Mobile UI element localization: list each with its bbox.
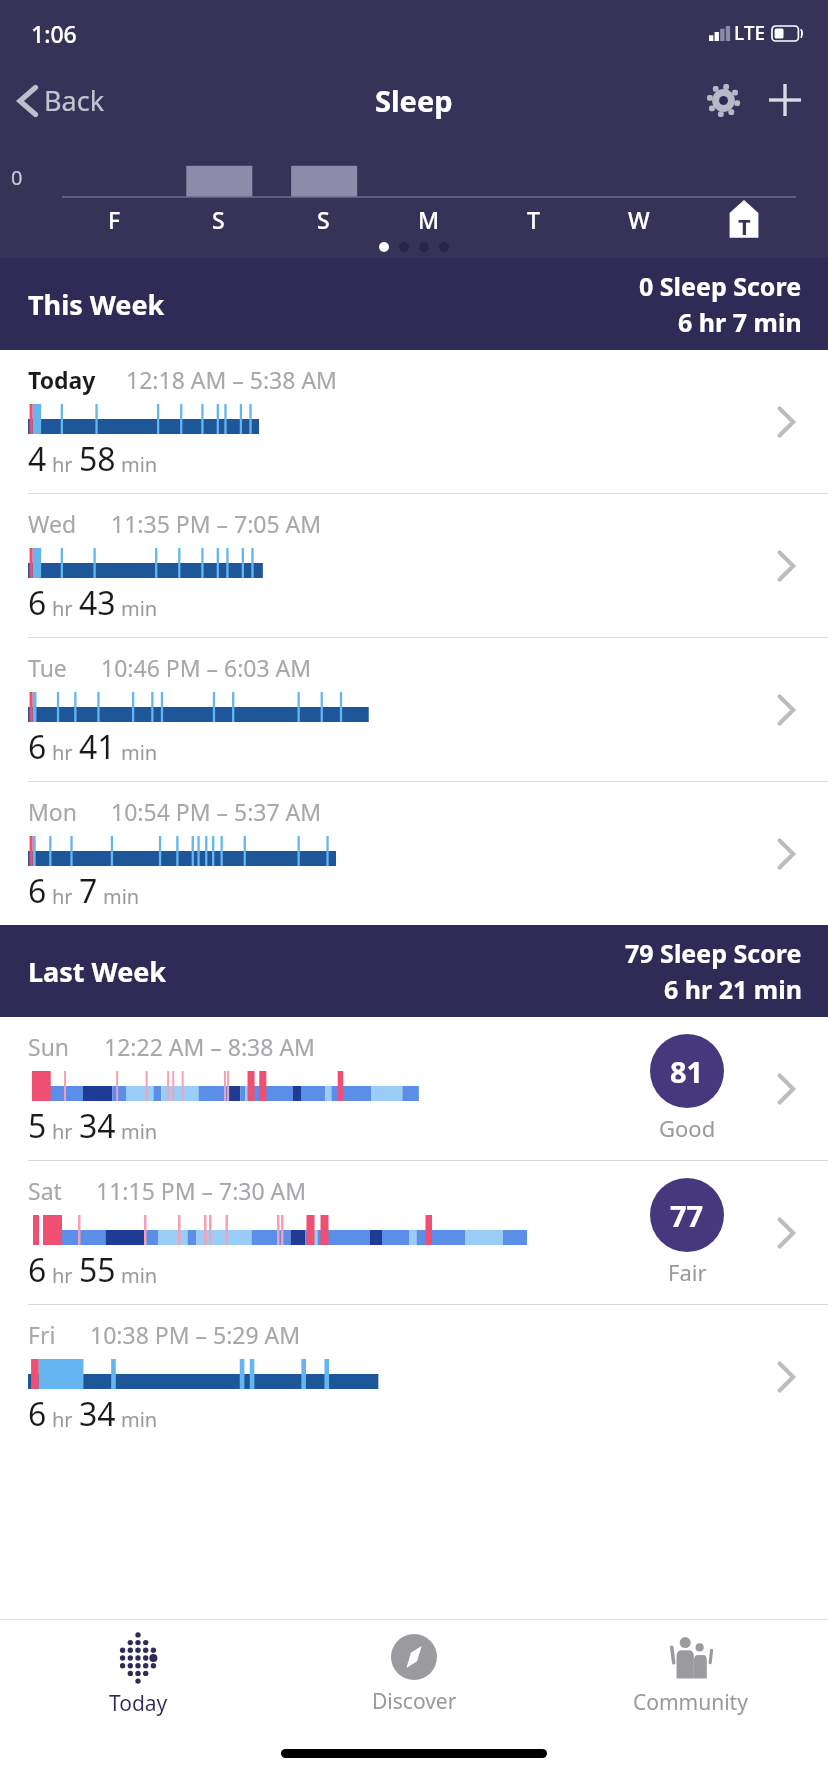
staticText: 6 — [28, 869, 47, 913]
staticText: M — [418, 204, 440, 235]
staticText: min — [121, 1262, 158, 1289]
staticText: 12:18 AM – 5:38 AM — [126, 364, 337, 395]
button[interactable]: Mon — [0, 782, 828, 925]
staticText: 0 — [11, 164, 23, 191]
staticText: Good — [659, 1113, 716, 1143]
staticText: Community — [633, 1688, 748, 1717]
button[interactable]: Wed — [0, 494, 828, 638]
staticText: 34 — [79, 1104, 116, 1148]
staticText: Wed — [28, 508, 77, 539]
staticText: min — [103, 883, 140, 910]
staticText: 5 — [28, 1104, 47, 1148]
button[interactable]: Add — [754, 69, 816, 131]
staticText: 58 — [79, 437, 116, 481]
staticText: 0 Sleep Score — [639, 269, 802, 303]
staticText: hr — [52, 1262, 73, 1289]
staticText: 6 — [28, 725, 47, 769]
button[interactable]: Discover — [276, 1620, 552, 1730]
button[interactable]: Tue — [0, 638, 828, 782]
staticText: 79 Sleep Score — [625, 936, 802, 970]
button[interactable]: This Week — [0, 258, 828, 350]
staticText: 1:06 — [31, 18, 77, 49]
staticText: S — [212, 204, 225, 235]
staticText: LTE — [734, 20, 766, 46]
staticText: 43 — [79, 581, 116, 625]
staticText: F — [108, 204, 121, 235]
staticText: hr — [52, 451, 73, 478]
staticText: hr — [52, 1118, 73, 1145]
staticText: hr — [52, 595, 73, 622]
staticText: Tue — [28, 652, 67, 683]
button[interactable]: Community — [552, 1620, 828, 1730]
staticText: Fri — [28, 1319, 56, 1350]
staticText: Discover — [372, 1687, 457, 1716]
staticText: Today — [109, 1689, 168, 1718]
staticText: 55 — [79, 1248, 116, 1292]
staticText: 12:22 AM – 8:38 AM — [104, 1031, 315, 1062]
staticText: 6 hr 21 min — [664, 972, 802, 1006]
staticText: 6 hr 7 min — [678, 305, 802, 339]
staticText: min — [121, 595, 158, 622]
staticText: 77 — [670, 1196, 704, 1235]
staticText: Last Week — [28, 953, 167, 990]
staticText: hr — [52, 739, 73, 766]
staticText: min — [121, 451, 158, 478]
staticText: 11:35 PM – 7:05 AM — [111, 508, 322, 539]
staticText: min — [121, 739, 158, 766]
staticText: This Week — [28, 286, 165, 323]
button[interactable]: Sat — [0, 1161, 828, 1305]
staticText: 34 — [79, 1392, 116, 1436]
staticText: 10:38 PM – 5:29 AM — [90, 1319, 301, 1350]
staticText: T — [527, 204, 540, 235]
staticText: 6 — [28, 1392, 47, 1436]
staticText: 4 — [28, 437, 47, 481]
staticText: min — [121, 1118, 158, 1145]
staticText: 81 — [670, 1052, 704, 1091]
staticText: 6 — [28, 1248, 47, 1292]
staticText: hr — [52, 883, 73, 910]
staticText: Sat — [28, 1175, 62, 1206]
staticText: hr — [52, 1406, 73, 1433]
staticText: T — [738, 211, 751, 241]
staticText: W — [628, 204, 650, 235]
staticText: 10:54 PM – 5:37 AM — [111, 796, 322, 827]
staticText: S — [317, 204, 330, 235]
staticText: Mon — [28, 796, 77, 827]
staticText: Fair — [668, 1257, 707, 1287]
staticText: Back — [44, 82, 105, 119]
staticText: 41 — [79, 725, 116, 769]
staticText: 10:46 PM – 6:03 AM — [101, 652, 312, 683]
staticText: 7 — [79, 869, 98, 913]
button[interactable]: Fri — [0, 1305, 828, 1448]
staticText: Sun — [28, 1031, 70, 1062]
button[interactable]: Sun — [0, 1017, 828, 1161]
staticText: 11:15 PM – 7:30 AM — [96, 1175, 307, 1206]
staticText: min — [121, 1406, 158, 1433]
button[interactable]: Settings — [692, 69, 754, 131]
staticText: 6 — [28, 581, 47, 625]
button[interactable]: Today — [0, 350, 828, 494]
staticText: Sleep — [375, 81, 453, 120]
button[interactable]: Back — [0, 74, 119, 127]
button[interactable]: Last Week — [0, 925, 828, 1017]
staticText: Today — [28, 364, 96, 395]
button[interactable]: Today — [0, 1620, 276, 1730]
